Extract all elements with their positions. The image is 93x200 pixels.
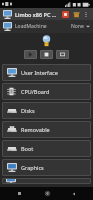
staticText: Removable [21,126,50,133]
button[interactable] [2,178,91,184]
button[interactable]: Disks [2,102,91,119]
staticText: CPU/Board [21,88,50,95]
button[interactable]: Start machine [24,50,37,59]
button[interactable]: Graphics [2,159,91,176]
button[interactable]: Back [65,187,83,200]
button[interactable]: User Interface [2,64,91,81]
button[interactable]: CPU/Board [2,83,91,100]
button[interactable]: Delete machine [72,10,80,18]
button[interactable]: Open display [56,50,69,59]
staticText: Graphics [21,164,44,171]
button[interactable]: Stop machine [61,10,69,18]
staticText: Boot [21,145,34,152]
button[interactable]: LoadMachine [0,20,93,33]
staticText: Disks [21,107,35,114]
staticText: LoadMachine [15,23,47,30]
staticText: Limbo x86 PC Em… [15,11,59,18]
button[interactable]: Removable [2,121,91,138]
button[interactable]: Boot [2,140,91,157]
staticText: User Interface [21,69,58,76]
staticText: None [71,23,84,30]
button[interactable]: More options [82,10,90,18]
button[interactable]: Home [38,187,56,200]
button[interactable]: Recent apps [10,187,28,200]
button[interactable]: Stop machine [40,50,53,59]
